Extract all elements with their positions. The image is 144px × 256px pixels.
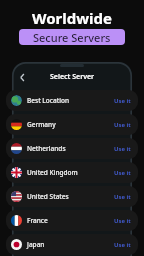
button[interactable]: Germany: [6, 114, 138, 135]
staticText: Select Server: [50, 72, 95, 82]
staticText: Use it: [114, 97, 131, 105]
staticText: Use it: [114, 169, 131, 177]
staticText: France: [27, 216, 114, 225]
button[interactable]: United Kingdom: [6, 162, 138, 183]
staticText: Use it: [114, 145, 131, 153]
staticText: Best Location: [27, 96, 114, 105]
staticText: Netherlands: [27, 144, 114, 153]
staticText: Use it: [114, 241, 131, 249]
staticText: Secure Servers: [33, 30, 111, 45]
button[interactable]: United States: [6, 186, 138, 207]
staticText: Use it: [114, 193, 131, 201]
button[interactable]: France: [6, 210, 138, 231]
staticText: United Kingdom: [27, 168, 114, 177]
button[interactable]: Japan: [6, 234, 138, 255]
staticText: Japan: [27, 240, 114, 249]
staticText: Worldwide: [0, 8, 144, 28]
staticText: Use it: [114, 217, 131, 225]
button[interactable]: Best Location: [6, 90, 138, 111]
button[interactable]: Netherlands: [6, 138, 138, 159]
staticText: United States: [27, 192, 114, 201]
staticText: Use it: [114, 121, 131, 129]
staticText: Germany: [27, 120, 114, 129]
button[interactable]: Back: [16, 71, 28, 83]
